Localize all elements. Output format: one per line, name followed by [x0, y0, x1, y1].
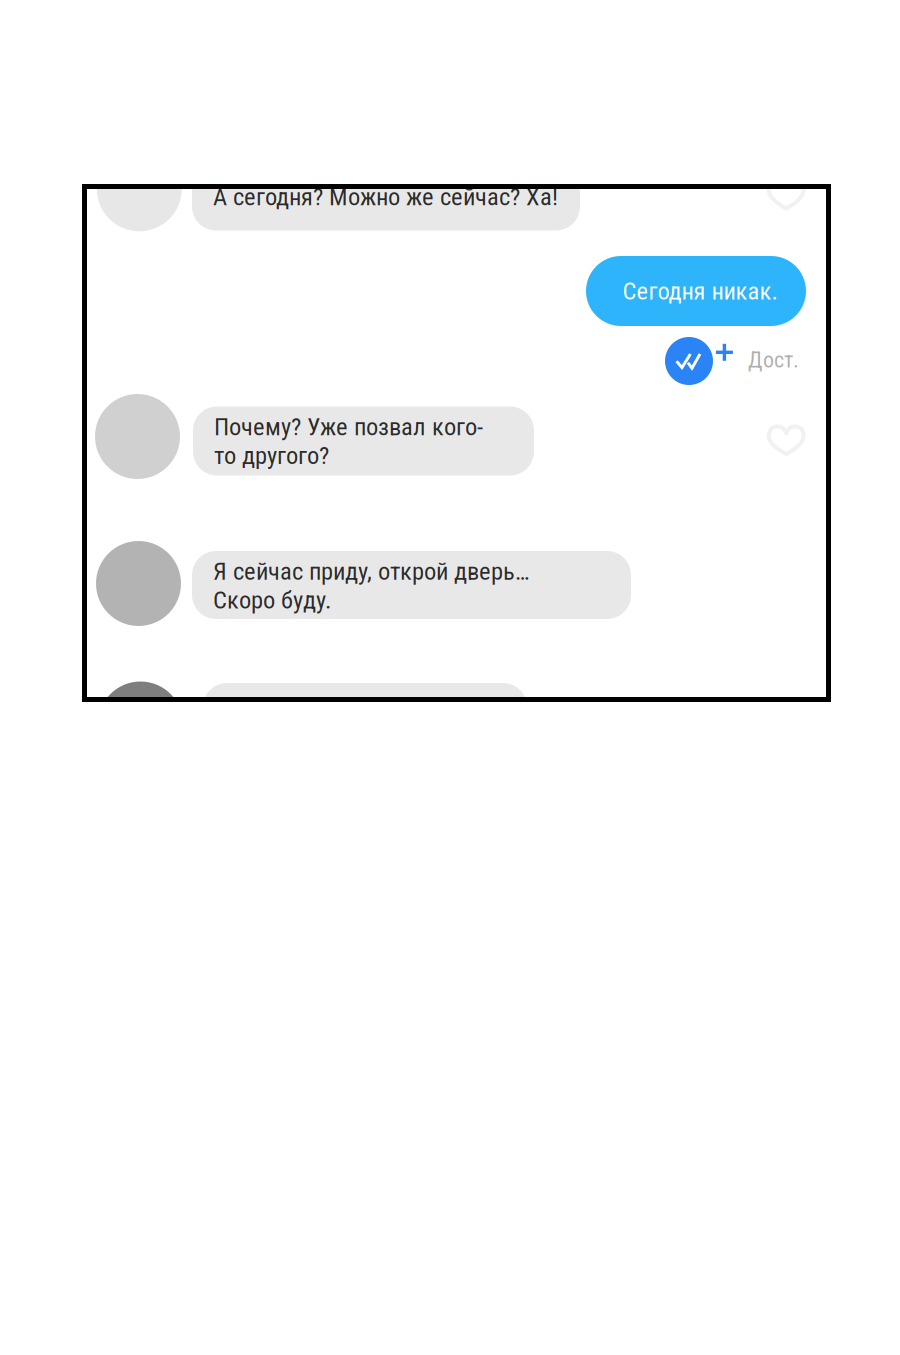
- button[interactable]: Like: [769, 180, 804, 208]
- button[interactable]: Сегодня никак.: [586, 256, 806, 326]
- staticText: Дост.: [748, 347, 799, 373]
- button[interactable]: Ты где?: [203, 683, 527, 751]
- button[interactable]: Like: [769, 426, 804, 454]
- staticText: Сегодня никак.: [622, 277, 777, 305]
- button[interactable]: А сегодня? Можно же сейчас? Ха!: [192, 161, 580, 230]
- staticText: А сегодня? Можно же сейчас? Ха!: [213, 182, 558, 211]
- button[interactable]: Я сейчас приду, открой дверь… Скоро буду…: [192, 551, 631, 619]
- button[interactable]: Почему? Уже позвал кого- то другого?: [193, 406, 534, 475]
- staticText: Я сейчас приду, открой дверь… Скоро буду…: [213, 557, 529, 614]
- staticText: Почему? Уже позвал кого- то другого?: [214, 412, 483, 470]
